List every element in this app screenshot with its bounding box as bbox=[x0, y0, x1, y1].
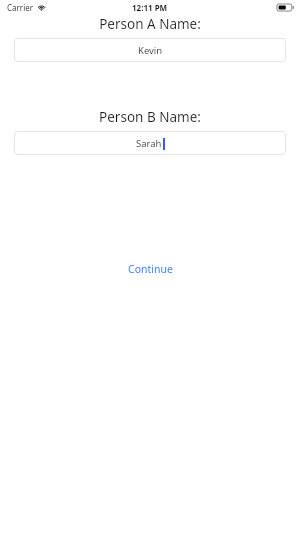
other: Wi-Fi signal bbox=[37, 4, 46, 11]
other: Battery level bbox=[277, 3, 294, 12]
staticText: Sarah bbox=[136, 137, 162, 150]
button[interactable]: Kevin bbox=[14, 38, 286, 62]
button[interactable]: Continue bbox=[122, 260, 179, 278]
staticText: 12:11 PM bbox=[132, 2, 168, 13]
staticText: Person B Name: bbox=[0, 108, 300, 126]
staticText: Kevin bbox=[138, 44, 163, 57]
staticText: Carrier bbox=[7, 2, 34, 13]
button[interactable]: Sarah bbox=[14, 131, 286, 155]
staticText: Person A Name: bbox=[0, 15, 300, 33]
staticText: Continue bbox=[128, 262, 173, 276]
